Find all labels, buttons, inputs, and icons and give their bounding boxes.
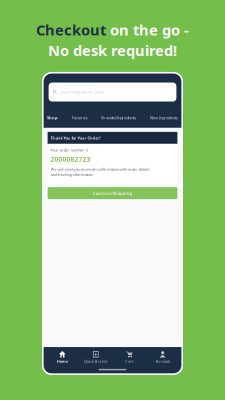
- staticText: No desk required!: [48, 40, 177, 60]
- button[interactable]: Home: [46, 349, 79, 366]
- staticText: on the go -: [106, 20, 189, 39]
- staticText: Account: [156, 358, 170, 364]
- button[interactable]: Account: [146, 349, 179, 366]
- button[interactable]: New Ingredients: [150, 114, 178, 122]
- button[interactable]: Shop: [47, 114, 58, 122]
- staticText: Your order number is: [51, 147, 89, 153]
- button[interactable]: Cart: [112, 349, 146, 366]
- staticText: Cart: [125, 358, 133, 364]
- staticText: 2000082723: [51, 155, 91, 164]
- staticText: Continue Shopping: [92, 190, 132, 196]
- button[interactable]: Branded Ingredients: [101, 114, 136, 122]
- button[interactable]: Search Ingredients Online: [49, 83, 176, 102]
- staticText: New Ingredients: [150, 115, 178, 120]
- staticText: Quick Access: [84, 358, 108, 364]
- staticText: Home: [57, 358, 68, 364]
- staticText: Factories: [72, 115, 88, 120]
- button[interactable]: Quick Access: [79, 349, 113, 366]
- staticText: We will send you an email confirmation w…: [51, 166, 150, 177]
- staticText: Checkout: [36, 20, 106, 39]
- staticText: Shop: [47, 115, 58, 120]
- button[interactable]: Continue Shopping: [48, 187, 177, 199]
- staticText: Thank You for Your Order!: [51, 135, 101, 140]
- staticText: Search Ingredients Online: [61, 89, 105, 95]
- button[interactable]: Factories: [72, 114, 88, 122]
- staticText: Branded Ingredients: [101, 115, 136, 120]
